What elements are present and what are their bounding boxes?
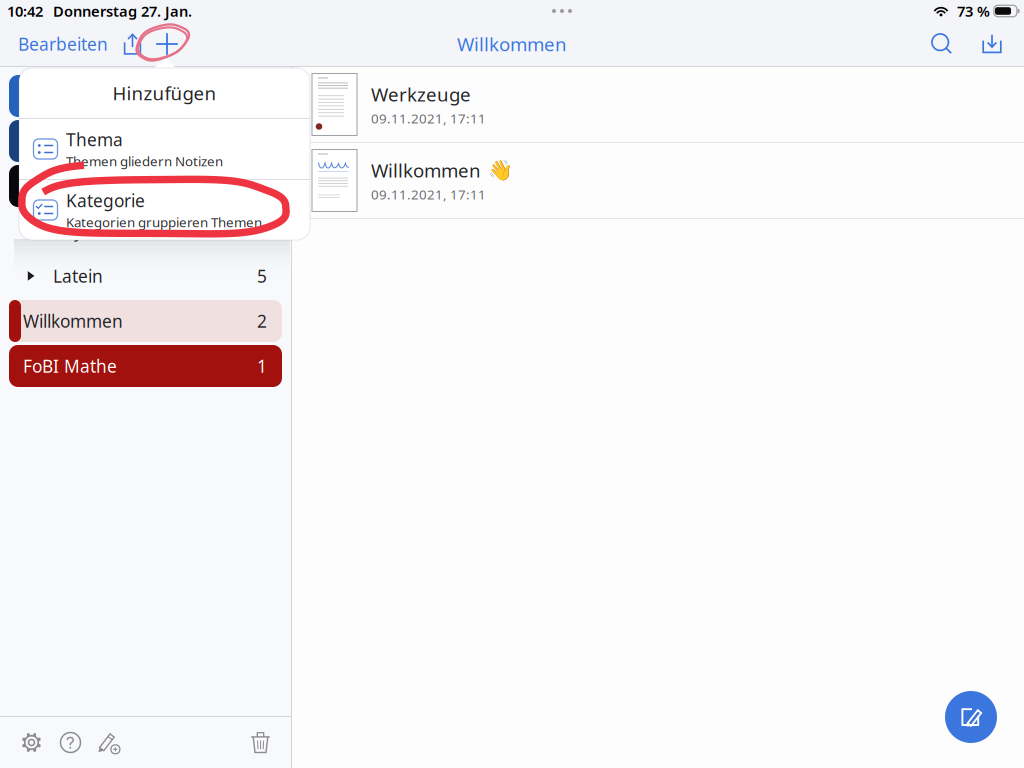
button[interactable]: Suchen [925, 27, 959, 61]
staticText: Geschichte [23, 174, 112, 197]
button[interactable]: Deutsch [9, 75, 282, 117]
staticText: Willkommen [371, 158, 481, 183]
button[interactable]: FoBI Mathe [9, 345, 282, 387]
staticText: Kategorien gruppieren Themen [66, 213, 262, 231]
staticText: 6 [257, 219, 267, 242]
staticText: 👋 [488, 159, 513, 182]
staticText: FoBI Mathe [23, 354, 117, 377]
staticText: Englisch [23, 129, 90, 152]
staticText: Latein [53, 264, 103, 287]
button[interactable]: Teilen [118, 29, 147, 58]
staticText: Werkzeuge [371, 82, 471, 107]
staticText: 2 [257, 174, 267, 197]
staticText: Themen gliedern Notizen [66, 152, 223, 170]
staticText: Willkommen [23, 309, 123, 332]
button[interactable]: Latein [9, 255, 282, 297]
button[interactable]: Geschichte [9, 165, 282, 207]
staticText: 73 % [957, 1, 990, 21]
button[interactable]: Neue Notiz erstellen [945, 691, 997, 743]
staticText: 09.11.2021, 17:11 [371, 109, 486, 127]
button[interactable]: Willkommen [9, 300, 282, 342]
staticText: Thema [66, 128, 123, 151]
staticText: Physik [53, 219, 104, 242]
button[interactable]: Werkzeuge [292, 67, 1024, 142]
staticText: 2 [257, 309, 267, 332]
button[interactable]: Einstellungen [13, 724, 50, 761]
button[interactable]: Thema [19, 119, 310, 179]
staticText: Hinzufügen [112, 81, 216, 105]
staticText: 1 [257, 354, 267, 377]
button[interactable]: Neue Notiz [89, 722, 129, 762]
button[interactable]: Englisch [9, 120, 282, 162]
staticText: Willkommen [457, 32, 567, 56]
button[interactable]: Hinzufügen [150, 29, 184, 59]
button[interactable]: Hilfe [52, 724, 89, 761]
staticText: Kategorie [66, 189, 145, 212]
button[interactable]: Importieren [975, 27, 1009, 61]
button[interactable]: Papierkorb [242, 722, 280, 762]
staticText: 5 [257, 264, 267, 287]
button[interactable]: Bearbeiten [13, 25, 113, 62]
button[interactable]: Physik [9, 210, 282, 252]
staticText: 09.11.2021, 17:11 [371, 185, 486, 203]
staticText: Donnerstag 27. Jan. [53, 1, 192, 21]
staticText: Bearbeiten [18, 32, 108, 55]
staticText: 10:42 [7, 1, 43, 21]
button[interactable]: Kategorie [19, 180, 310, 240]
button[interactable]: Willkommen [292, 143, 1024, 218]
